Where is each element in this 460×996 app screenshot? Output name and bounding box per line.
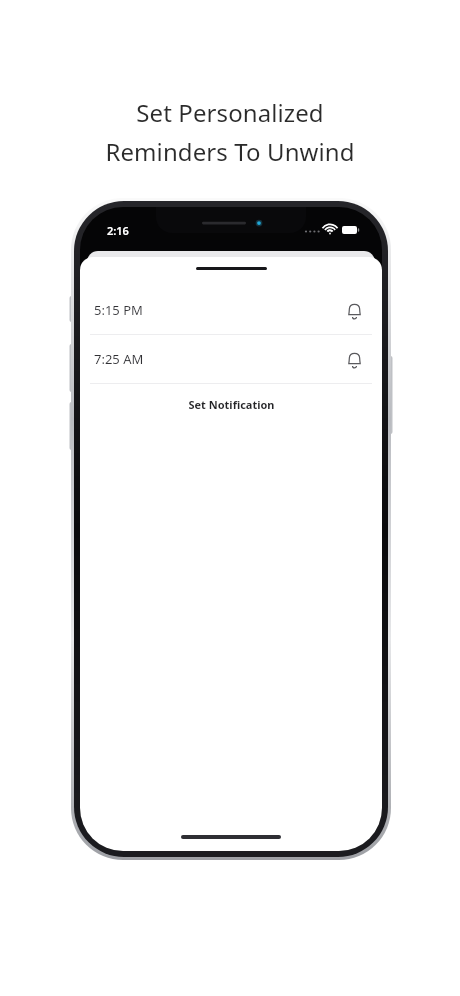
staticText: Reminders To Unwind xyxy=(105,135,355,168)
button[interactable]: Toggle notification for 7:25 AM xyxy=(340,345,368,373)
button[interactable]: Toggle notification for 5:15 PM xyxy=(340,296,368,324)
button[interactable]: 5:15 PM xyxy=(80,286,382,334)
staticText: 7:25 AM xyxy=(94,350,144,368)
staticText: 2:16 xyxy=(107,223,129,238)
button[interactable]: 7:25 AM xyxy=(80,335,382,383)
staticText: Set Notification xyxy=(188,397,275,412)
button[interactable]: Set Notification xyxy=(80,384,382,424)
staticText: Set Personalized xyxy=(136,96,324,129)
staticText: 5:15 PM xyxy=(94,301,143,319)
